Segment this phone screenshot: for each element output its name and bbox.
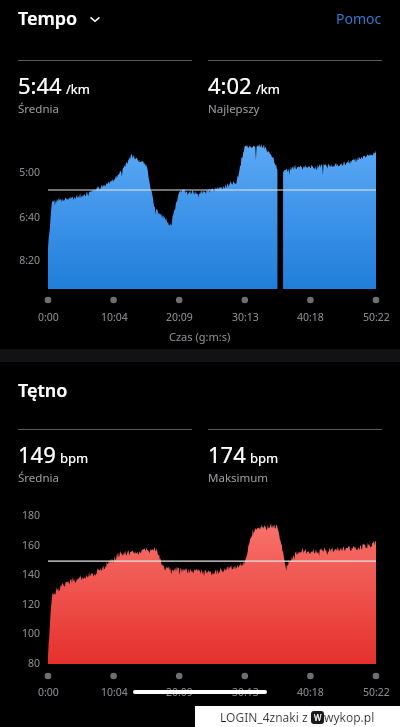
- staticText: /km: [66, 80, 90, 98]
- staticText: 120: [21, 597, 40, 611]
- staticText: 160: [21, 538, 40, 552]
- staticText: 20:09: [166, 685, 193, 699]
- staticText: 30:13: [232, 310, 259, 324]
- staticText: Pomoc: [336, 9, 382, 28]
- button[interactable]: 4:02: [208, 60, 382, 117]
- staticText: LOGIN_4znaki z: [220, 709, 311, 725]
- staticText: 5:00: [19, 165, 40, 179]
- staticText: 4:02: [208, 70, 252, 100]
- staticText: 50:22: [363, 310, 390, 324]
- button[interactable]: 149: [18, 429, 192, 486]
- staticText: W: [314, 712, 322, 723]
- staticText: 40:18: [297, 310, 324, 324]
- staticText: 174: [208, 439, 246, 469]
- staticText: 6:40: [19, 210, 40, 224]
- staticText: 30:13: [232, 685, 259, 699]
- staticText: Maksimum: [208, 470, 269, 486]
- button[interactable]: 174: [208, 429, 382, 486]
- staticText: Tętno: [18, 378, 68, 403]
- staticText: 100: [21, 626, 40, 640]
- staticText: Czas (g:m:s): [169, 329, 231, 344]
- button[interactable]: Pomoc: [334, 5, 384, 32]
- staticText: wykop.pl: [324, 709, 375, 725]
- staticText: Średnia: [18, 101, 59, 117]
- staticText: 20:09: [166, 310, 193, 324]
- staticText: 0:00: [38, 310, 59, 324]
- staticText: 40:18: [297, 685, 324, 699]
- button[interactable]: Tempo: [18, 6, 102, 31]
- button[interactable]: 5:44: [18, 60, 192, 117]
- staticText: Tempo: [18, 6, 78, 31]
- staticText: 5:44: [18, 70, 62, 100]
- staticText: 0:00: [38, 685, 59, 699]
- staticText: 180: [21, 508, 40, 522]
- staticText: 8:20: [19, 253, 40, 267]
- staticText: bpm: [250, 449, 279, 467]
- staticText: Najlepszy: [208, 101, 260, 117]
- staticText: 140: [21, 567, 40, 581]
- staticText: 10:04: [101, 310, 128, 324]
- staticText: /km: [256, 80, 280, 98]
- staticText: bpm: [60, 449, 89, 467]
- staticText: 10:04: [101, 685, 128, 699]
- staticText: 80: [27, 656, 40, 670]
- staticText: 149: [18, 439, 56, 469]
- staticText: Średnia: [18, 470, 59, 486]
- staticText: 50:22: [363, 685, 390, 699]
